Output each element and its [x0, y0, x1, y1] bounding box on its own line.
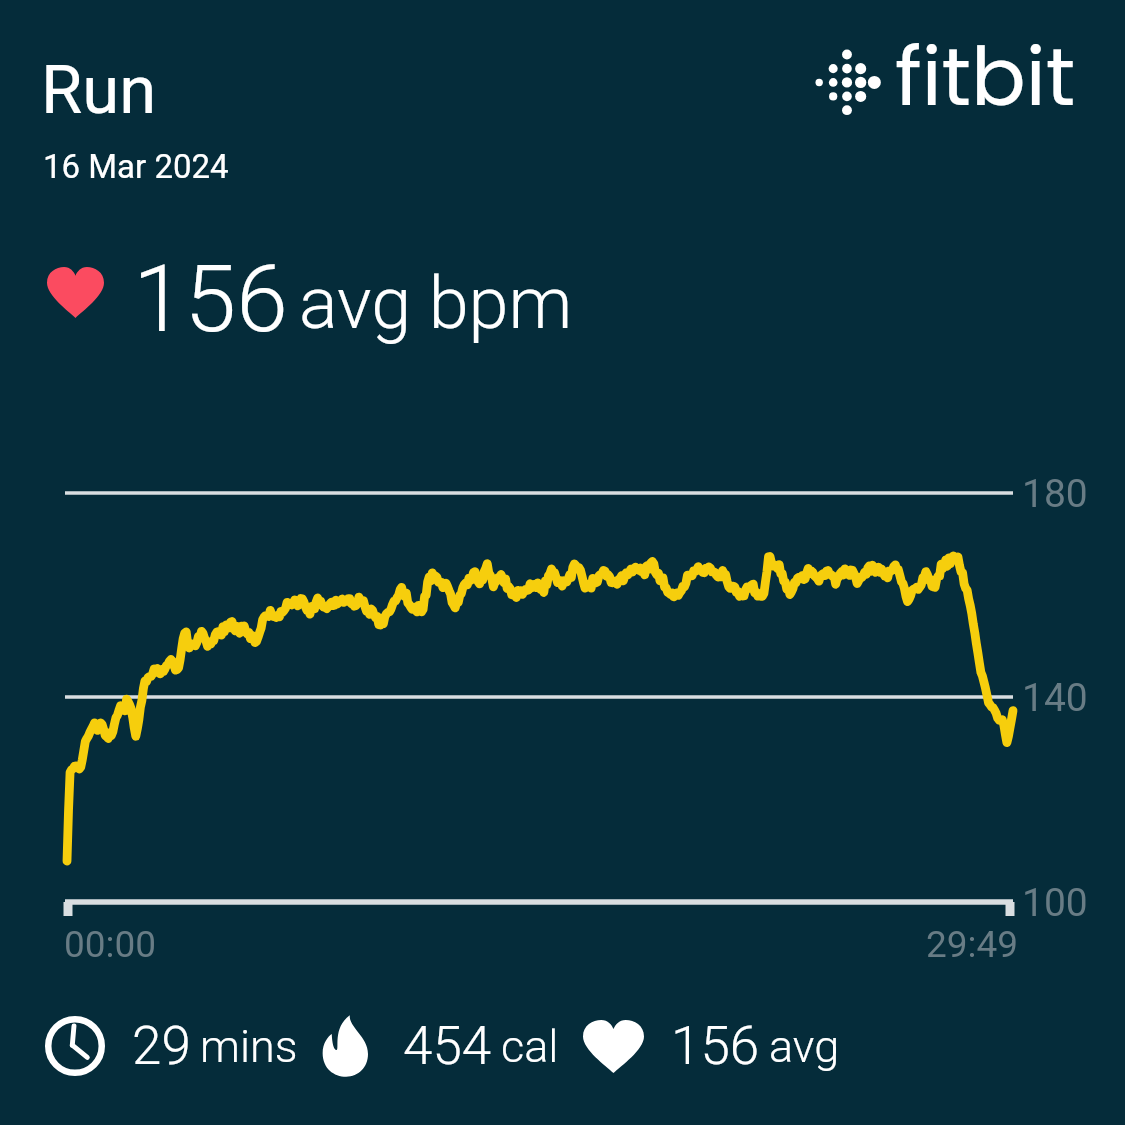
- staticText: 16 Mar 2024: [43, 147, 229, 186]
- staticText: fitbit: [895, 20, 1076, 115]
- staticText: 29:49: [926, 923, 1019, 966]
- button[interactable]: Fitbit: [810, 28, 1080, 123]
- staticText: 29: [132, 1015, 191, 1077]
- staticText: 100: [1022, 880, 1088, 926]
- staticText: 454: [403, 1015, 492, 1077]
- button[interactable]: 156: [45, 245, 570, 345]
- staticText: 140: [1022, 675, 1088, 721]
- staticText: mins: [200, 1020, 298, 1073]
- button[interactable]: 156: [583, 1015, 840, 1077]
- staticText: avg: [769, 1020, 840, 1073]
- staticText: 180: [1022, 471, 1088, 517]
- staticText: cal: [501, 1020, 559, 1073]
- button[interactable]: 454: [320, 1015, 559, 1077]
- staticText: 156: [671, 1015, 760, 1077]
- button[interactable]: 29: [45, 1015, 298, 1077]
- staticText: avg bpm: [299, 261, 573, 345]
- staticText: 156: [133, 245, 288, 345]
- staticText: Run: [41, 51, 157, 130]
- staticText: 00:00: [64, 923, 157, 966]
